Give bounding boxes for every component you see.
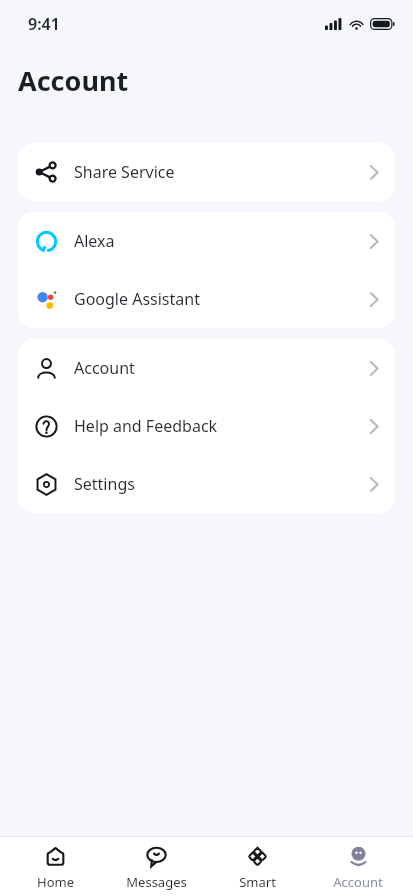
staticText: Share Service: [74, 161, 175, 183]
other: Home: [44, 845, 67, 868]
button[interactable]: Google Assistant: [18, 270, 395, 328]
staticText: Help and Feedback: [74, 415, 218, 437]
button[interactable]: Messages: [110, 838, 202, 896]
button[interactable]: Account: [18, 339, 395, 397]
staticText: Settings: [74, 473, 135, 495]
button[interactable]: Smart: [211, 838, 303, 896]
staticText: Google Assistant: [74, 288, 200, 310]
button[interactable]: Settings: [18, 455, 395, 513]
button[interactable]: Help and Feedback: [18, 397, 395, 455]
other: Messages: [145, 845, 168, 868]
staticText: Alexa: [74, 230, 115, 252]
staticText: Account: [18, 62, 129, 99]
staticText: Account: [333, 873, 383, 891]
other: Smart: [246, 845, 269, 868]
staticText: 9:41: [28, 13, 60, 35]
button[interactable]: Account: [312, 838, 404, 896]
staticText: Smart: [239, 873, 276, 891]
staticText: Home: [37, 873, 74, 891]
staticText: Messages: [126, 873, 187, 891]
other: Account: [347, 845, 370, 868]
button[interactable]: Alexa: [18, 212, 395, 270]
button[interactable]: Home: [9, 838, 101, 896]
staticText: Account: [74, 357, 135, 379]
button[interactable]: Share Service: [18, 143, 395, 201]
